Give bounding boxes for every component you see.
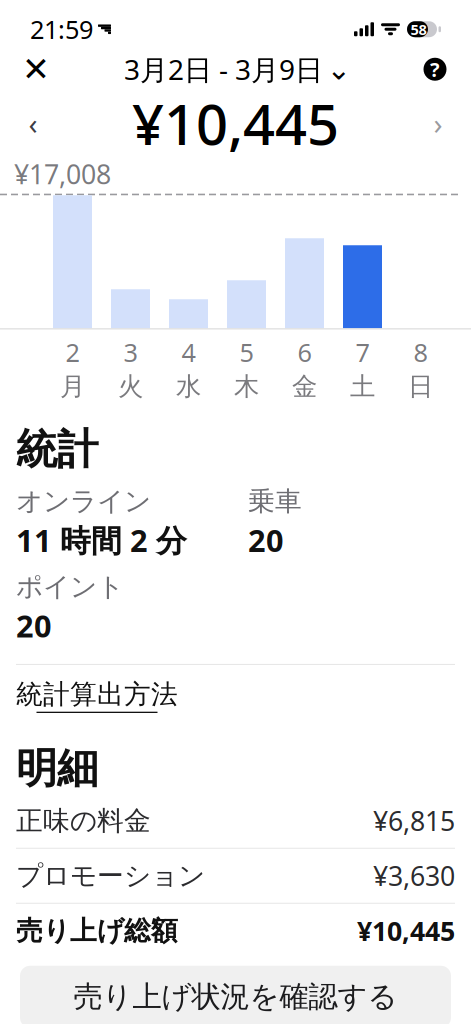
staticText: 20 (16, 605, 52, 646)
staticText: ポイント (16, 570, 124, 603)
staticText: ‹ (28, 104, 37, 143)
staticText: 月 (60, 371, 85, 402)
staticText: ¥3,630 (373, 858, 455, 893)
staticText: ✕ (22, 50, 50, 88)
staticText: 統計算出方法 (16, 678, 178, 711)
staticText: 3 (123, 335, 137, 369)
staticText: 6 (297, 335, 311, 369)
staticText: 金 (292, 371, 317, 402)
staticText: 火 (118, 371, 143, 402)
staticText: 木 (234, 371, 259, 402)
staticText: 明細 (16, 743, 98, 794)
staticText: 売り上げ状況を確認する (73, 979, 397, 1015)
staticText: 4 (181, 335, 195, 369)
staticText: ¥17,008 (14, 156, 111, 192)
staticText: › (433, 104, 442, 143)
staticText: 11 時間 2 分 (16, 520, 187, 560)
button[interactable]: 閉じる (14, 47, 58, 91)
staticText: ¥6,815 (373, 803, 455, 838)
staticText: プロモーション (16, 859, 205, 892)
button[interactable]: 次の期間 (417, 101, 459, 145)
staticText: 乗車 (248, 485, 302, 518)
button[interactable]: 統計算出方法 (0, 665, 471, 717)
staticText: 7 (355, 335, 369, 369)
staticText: ? (430, 56, 440, 83)
staticText: 2 (65, 335, 79, 369)
button[interactable]: 前の期間 (12, 101, 54, 145)
staticText: 正味の料金 (16, 804, 151, 837)
staticText: 21:59 (30, 12, 93, 46)
button[interactable]: 3月2日 - 3月9日 (118, 47, 353, 91)
staticText: 3月2日 - 3月9日 (124, 51, 323, 88)
staticText: 8 (413, 335, 427, 369)
staticText: オンライン (16, 485, 151, 518)
staticText: 統計 (16, 424, 98, 475)
staticText: ¥10,445 (357, 913, 455, 948)
button[interactable]: 売り上げ状況を確認する (20, 966, 451, 1024)
staticText: 5 (239, 335, 253, 369)
staticText: ¥10,445 (132, 86, 339, 160)
staticText: 20 (248, 520, 284, 560)
staticText: 日 (408, 371, 433, 402)
staticText: 土 (350, 371, 375, 402)
staticText: 水 (176, 371, 201, 402)
staticText: 58 (410, 19, 426, 39)
staticText: ⌄ (326, 53, 351, 86)
button[interactable]: ヘルプ (413, 47, 457, 91)
staticText: 売り上げ総額 (16, 914, 178, 947)
